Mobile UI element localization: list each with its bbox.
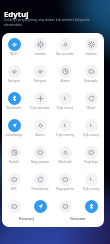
button[interactable]: Projekcja	[78, 146, 104, 166]
staticText: Obrót	[78, 106, 104, 110]
staticText: Alarm	[52, 79, 78, 83]
button[interactable]: Tryb nocny	[78, 119, 104, 139]
staticText: Gotowe	[70, 216, 86, 222]
staticText: Nagrywanie	[27, 160, 53, 164]
button[interactable]: Bluetooth	[1, 92, 27, 112]
button[interactable]: Latarka	[27, 38, 53, 58]
button[interactable]: Oszczędz.	[78, 65, 104, 85]
button[interactable]: Tryb nocny	[78, 173, 104, 193]
button[interactable]: Obrót	[78, 92, 104, 112]
button[interactable]: Wi-Fi	[1, 38, 27, 58]
staticText: Latarka	[27, 52, 53, 56]
button[interactable]: Gotowe	[58, 213, 98, 224]
staticText: Tryb samolot.	[27, 106, 53, 110]
staticText: Resetuj	[19, 216, 34, 222]
button[interactable]: Latarka	[78, 38, 104, 58]
button[interactable]: Tryb ciemny	[52, 119, 78, 139]
button[interactable]: Hotspot	[27, 65, 53, 85]
staticText: Oszczędz.	[78, 79, 104, 83]
staticText: Tryb nocny	[52, 106, 78, 110]
staticText: Hotspot	[27, 79, 53, 83]
staticText: Wi-Fi	[1, 52, 27, 56]
staticText: Przesyłanie	[27, 187, 53, 191]
staticText: Dotknij i przytrzymaj, aby dodać lub zmi…	[4, 17, 104, 27]
button[interactable]: Budzik	[1, 146, 27, 166]
button[interactable]: Resetuj	[6, 213, 46, 224]
button[interactable]: Lokalizacja	[1, 119, 27, 139]
button[interactable]: tile	[52, 200, 78, 220]
button[interactable]: NFC	[1, 173, 27, 193]
staticText: Głośność	[52, 160, 78, 164]
button[interactable]: Tryb samolot.	[27, 92, 53, 112]
button[interactable]: Głośność	[52, 146, 78, 166]
button[interactable]: tile	[1, 200, 27, 220]
button[interactable]: Nie przeszk.	[52, 38, 78, 58]
staticText: Projekcja	[78, 160, 104, 164]
staticText: Budzik	[1, 160, 27, 164]
button[interactable]: Tryb nocny	[52, 92, 78, 112]
staticText: Tryb nocny	[78, 187, 104, 191]
staticText: Tryb nocny	[78, 133, 104, 137]
staticText: Edytuj	[4, 9, 29, 20]
button[interactable]: tile	[78, 200, 104, 220]
button[interactable]: Nagrywanie	[52, 173, 78, 193]
staticText: Bluetooth	[1, 106, 27, 110]
staticText: NFC	[1, 187, 27, 191]
button[interactable]: Hotspot	[1, 65, 27, 85]
staticText: Alarm	[27, 133, 53, 137]
button[interactable]: Alarm	[52, 65, 78, 85]
staticText: Nie przeszk.	[52, 52, 78, 56]
staticText: Nagrywanie	[52, 187, 78, 191]
staticText: Latarka	[78, 52, 104, 56]
button[interactable]: tile	[27, 200, 53, 220]
button[interactable]: Nagrywanie	[27, 146, 53, 166]
button[interactable]: Przesyłanie	[27, 173, 53, 193]
staticText: Tryb ciemny	[52, 133, 78, 137]
staticText: Lokalizacja	[1, 133, 27, 137]
button[interactable]: Alarm	[27, 119, 53, 139]
staticText: Hotspot	[1, 79, 27, 83]
